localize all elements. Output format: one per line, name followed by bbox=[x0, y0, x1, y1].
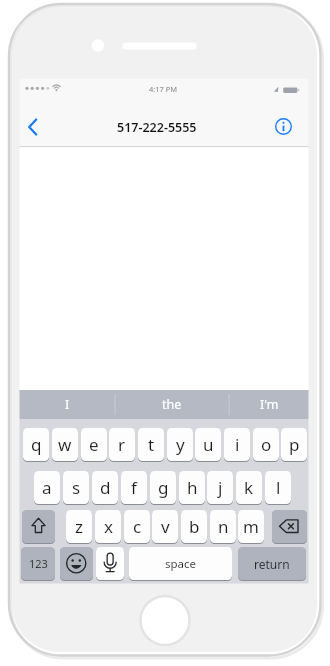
staticText: return bbox=[254, 556, 290, 572]
staticText: e bbox=[89, 433, 99, 456]
button[interactable]: n bbox=[210, 510, 236, 543]
button[interactable]: I bbox=[20, 390, 115, 419]
button[interactable] bbox=[270, 113, 297, 140]
button[interactable]: I'm bbox=[229, 390, 310, 419]
button[interactable]: e bbox=[81, 428, 107, 461]
staticText: s bbox=[72, 476, 81, 499]
button[interactable]: c bbox=[124, 510, 150, 543]
staticText: 123 bbox=[29, 556, 48, 571]
staticText: c bbox=[133, 515, 142, 538]
staticText: x bbox=[104, 515, 113, 538]
button[interactable]: l bbox=[265, 471, 291, 504]
staticText: k bbox=[244, 476, 254, 499]
button[interactable]: p bbox=[281, 428, 307, 461]
button[interactable] bbox=[96, 547, 124, 580]
button[interactable]: m bbox=[238, 510, 264, 543]
button[interactable]: h bbox=[179, 471, 205, 504]
staticText: I'm bbox=[260, 396, 279, 413]
staticText: 4:17 PM bbox=[149, 84, 178, 94]
button[interactable]: space bbox=[129, 547, 232, 580]
button[interactable]: u bbox=[195, 428, 221, 461]
button[interactable]: t bbox=[138, 428, 164, 461]
staticText: I bbox=[65, 396, 70, 413]
staticText: p bbox=[289, 433, 300, 456]
button[interactable]: r bbox=[109, 428, 135, 461]
staticText: l bbox=[276, 476, 281, 499]
button[interactable]: s bbox=[63, 471, 89, 504]
button[interactable]: d bbox=[92, 471, 118, 504]
button[interactable]: 123 bbox=[21, 547, 55, 580]
button[interactable]: q bbox=[23, 428, 49, 461]
button[interactable] bbox=[272, 510, 307, 543]
staticText: a bbox=[42, 476, 52, 499]
staticText: r bbox=[118, 433, 126, 456]
button[interactable]: z bbox=[66, 510, 92, 543]
button[interactable] bbox=[60, 547, 93, 580]
staticText: j bbox=[218, 476, 223, 499]
staticText: f bbox=[131, 476, 137, 499]
staticText: h bbox=[187, 476, 198, 499]
staticText: q bbox=[31, 433, 42, 456]
button[interactable]: j bbox=[207, 471, 233, 504]
staticText: u bbox=[203, 433, 214, 456]
staticText: o bbox=[261, 433, 272, 456]
button[interactable]: return bbox=[238, 547, 306, 580]
staticText: i bbox=[235, 433, 240, 456]
button[interactable]: i bbox=[224, 428, 250, 461]
staticText: t bbox=[148, 433, 155, 456]
staticText: y bbox=[176, 433, 185, 456]
button[interactable]: b bbox=[181, 510, 207, 543]
staticText: m bbox=[243, 515, 259, 538]
button[interactable]: v bbox=[152, 510, 178, 543]
staticText: space bbox=[165, 556, 197, 572]
staticText: z bbox=[75, 515, 83, 538]
button[interactable]: x bbox=[95, 510, 121, 543]
button[interactable]: f bbox=[121, 471, 147, 504]
button[interactable]: a bbox=[34, 471, 60, 504]
button[interactable]: w bbox=[52, 428, 78, 461]
staticText: b bbox=[189, 515, 200, 538]
button[interactable]: g bbox=[150, 471, 176, 504]
staticText: d bbox=[100, 476, 111, 499]
button[interactable]: k bbox=[236, 471, 262, 504]
button[interactable] bbox=[22, 111, 44, 143]
staticText: g bbox=[158, 476, 169, 499]
staticText: w bbox=[58, 433, 72, 456]
staticText: v bbox=[161, 515, 170, 538]
button[interactable]: y bbox=[167, 428, 193, 461]
staticText: the bbox=[162, 396, 182, 413]
staticText: 517-222-5555 bbox=[117, 119, 197, 136]
button[interactable]: o bbox=[253, 428, 279, 461]
button[interactable] bbox=[22, 510, 55, 543]
staticText: n bbox=[218, 515, 229, 538]
button[interactable]: the bbox=[115, 390, 229, 419]
